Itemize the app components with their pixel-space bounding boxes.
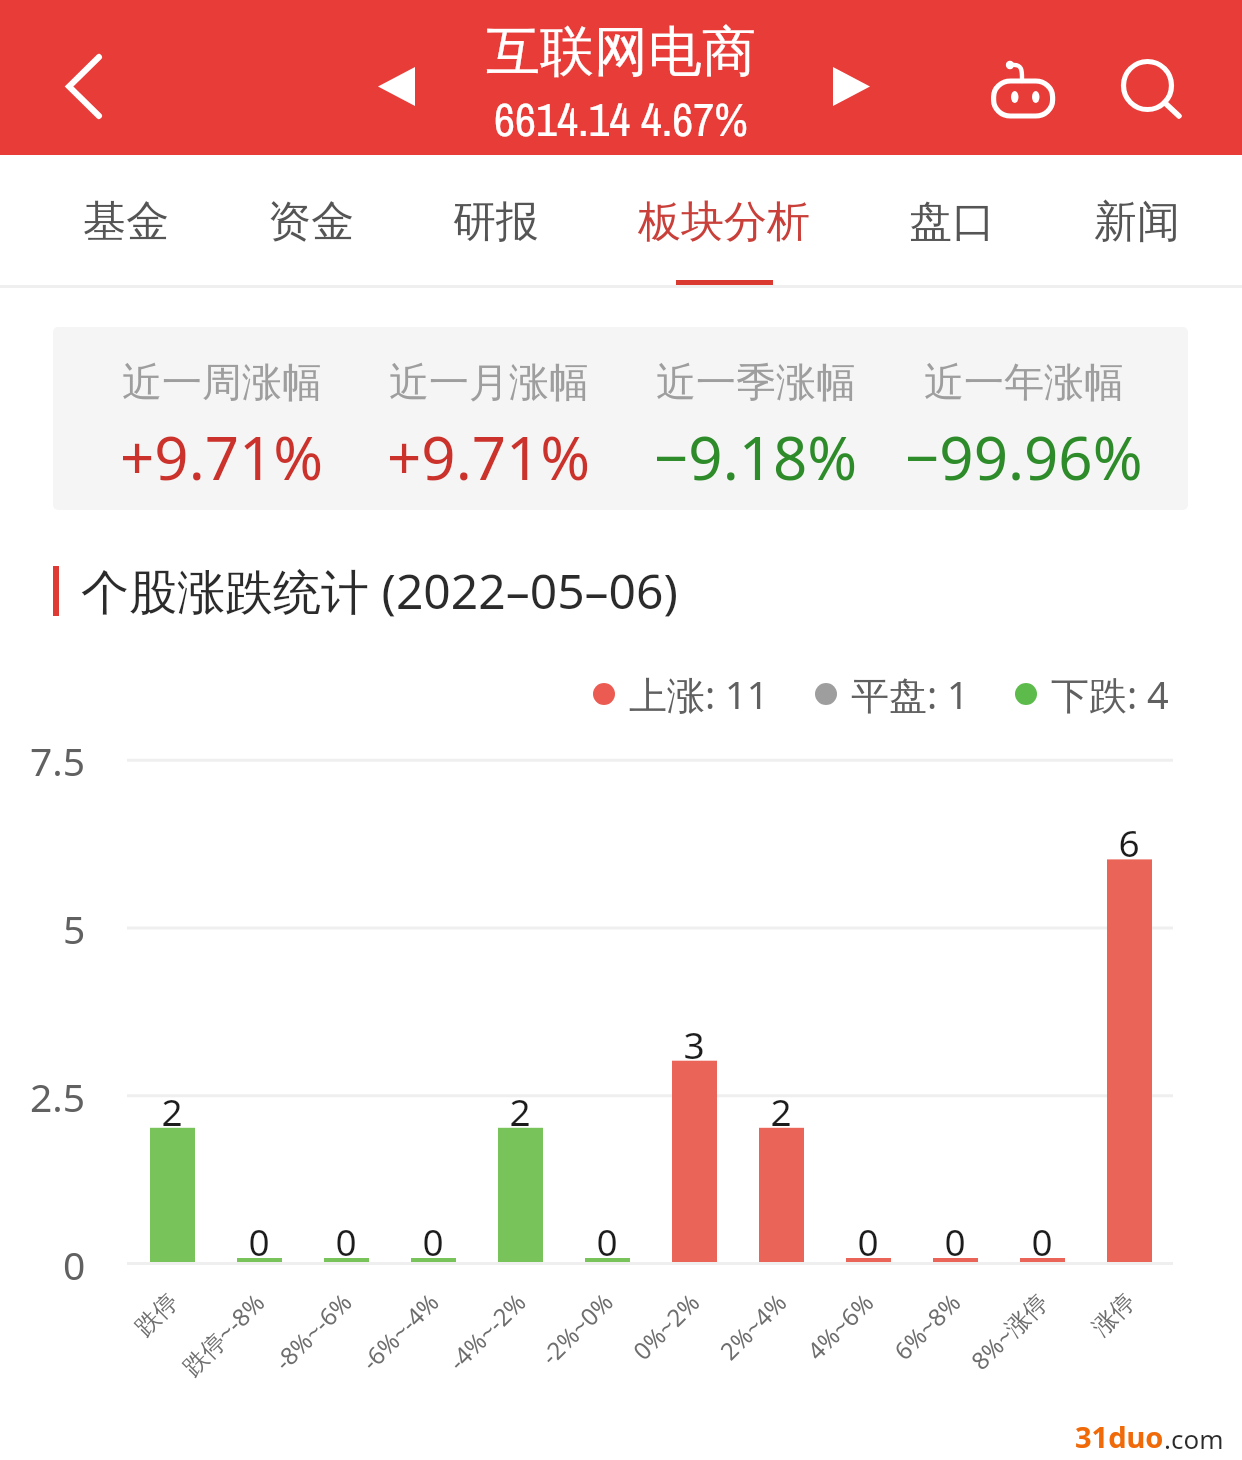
button[interactable]: 新闻 bbox=[1094, 155, 1180, 287]
staticText: 近一月涨幅 bbox=[389, 357, 589, 407]
button[interactable]: 盘口 bbox=[909, 155, 995, 287]
staticText: 6614.14 4.67% bbox=[494, 88, 748, 150]
staticText: +9.71% bbox=[387, 416, 591, 498]
button[interactable]: 近一季涨幅 bbox=[622, 357, 890, 498]
staticText: 近一季涨幅 bbox=[656, 357, 856, 407]
staticText: 新闻 bbox=[1094, 195, 1180, 249]
staticText: 互联网电商 bbox=[486, 18, 756, 86]
button[interactable]: 近一周涨幅 bbox=[88, 357, 355, 498]
button[interactable]: Back bbox=[24, 26, 144, 146]
button[interactable]: 上涨: 11 bbox=[593, 668, 769, 720]
staticText: .com bbox=[1164, 1421, 1224, 1456]
staticText: 近一周涨幅 bbox=[122, 357, 322, 407]
button[interactable]: Previous sector bbox=[378, 67, 468, 157]
staticText: 平盘: 1 bbox=[851, 668, 969, 720]
staticText: 研报 bbox=[453, 195, 539, 249]
staticText: 板块分析 bbox=[638, 195, 810, 249]
staticText: 资金 bbox=[268, 195, 354, 249]
button[interactable]: AI assistant bbox=[963, 33, 1083, 153]
staticText: 个股涨跌统计 (2022–05–06) bbox=[81, 558, 678, 624]
staticText: 上涨: 11 bbox=[629, 668, 769, 720]
button[interactable]: 近一月涨幅 bbox=[355, 357, 622, 498]
button[interactable]: 平盘: 1 bbox=[815, 668, 969, 720]
button[interactable]: 近一年涨幅 bbox=[890, 357, 1158, 498]
staticText: −99.96% bbox=[905, 416, 1143, 498]
button[interactable]: 下跌: 4 bbox=[1015, 668, 1169, 720]
staticText: −9.18% bbox=[654, 416, 858, 498]
button[interactable]: 资金 bbox=[268, 155, 354, 287]
button[interactable]: Next sector bbox=[833, 67, 923, 157]
staticText: 基金 bbox=[83, 195, 169, 249]
button[interactable]: 基金 bbox=[83, 155, 169, 287]
staticText: 31duo bbox=[1075, 1417, 1164, 1456]
button[interactable]: 研报 bbox=[453, 155, 539, 287]
button[interactable]: 板块分析 bbox=[638, 155, 810, 287]
staticText: 盘口 bbox=[909, 195, 995, 249]
staticText: 近一年涨幅 bbox=[924, 357, 1124, 407]
staticText: +9.71% bbox=[120, 416, 324, 498]
button[interactable]: Search bbox=[1085, 25, 1205, 145]
staticText: 下跌: 4 bbox=[1051, 668, 1169, 720]
